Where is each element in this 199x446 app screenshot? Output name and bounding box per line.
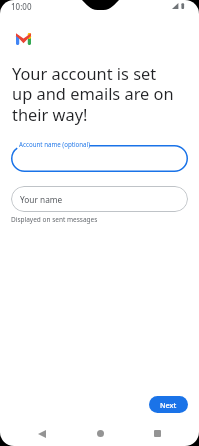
staticText: Your account is set up and emails are on… [12,62,175,126]
button[interactable]: Home [88,421,112,446]
staticText: 10:00 [11,1,32,12]
staticText: Account name (optional) [19,140,91,148]
staticText: Next [160,400,177,410]
button[interactable]: Recent apps [145,421,169,446]
button[interactable]: Account name (optional) [11,145,188,172]
staticText: Your name [20,194,63,205]
button[interactable]: Your name [11,186,188,212]
button[interactable]: Back [30,421,54,446]
button[interactable]: Next [149,396,188,413]
staticText: Displayed on sent messages [11,215,98,224]
